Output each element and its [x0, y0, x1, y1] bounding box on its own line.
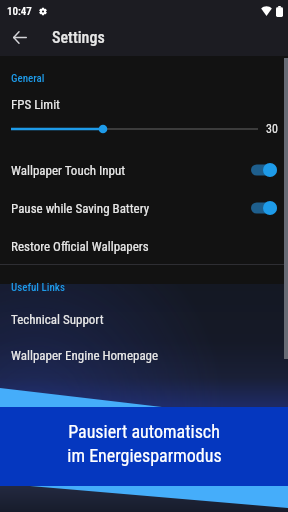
- staticText: Wallpaper Touch Input: [11, 163, 126, 178]
- staticText: im Energiesparmodus: [67, 445, 222, 466]
- staticText: 10:47: [7, 5, 32, 18]
- staticText: Pause while Saving Battery: [11, 201, 150, 216]
- staticText: FPS Limit: [11, 97, 60, 111]
- staticText: Wallpaper Engine Homepage: [11, 348, 159, 363]
- staticText: Restore Official Wallpapers: [11, 239, 149, 254]
- staticText: Pausiert automatisch: [68, 421, 220, 442]
- staticText: Useful Links: [11, 281, 65, 294]
- button[interactable]: Wallpaper Touch Input: [0, 151, 288, 189]
- button[interactable]: Pause while Saving Battery: [0, 189, 288, 227]
- button[interactable]: Back: [2, 19, 38, 55]
- button[interactable]: Restore Official Wallpapers: [0, 227, 288, 265]
- staticText: General: [11, 72, 45, 85]
- button[interactable]: 30: [0, 122, 288, 136]
- staticText: 30: [266, 122, 278, 136]
- button[interactable]: Wallpaper Engine Homepage: [0, 336, 288, 374]
- staticText: Settings: [52, 28, 105, 47]
- button[interactable]: Technical Support: [0, 300, 288, 338]
- staticText: Technical Support: [11, 312, 104, 327]
